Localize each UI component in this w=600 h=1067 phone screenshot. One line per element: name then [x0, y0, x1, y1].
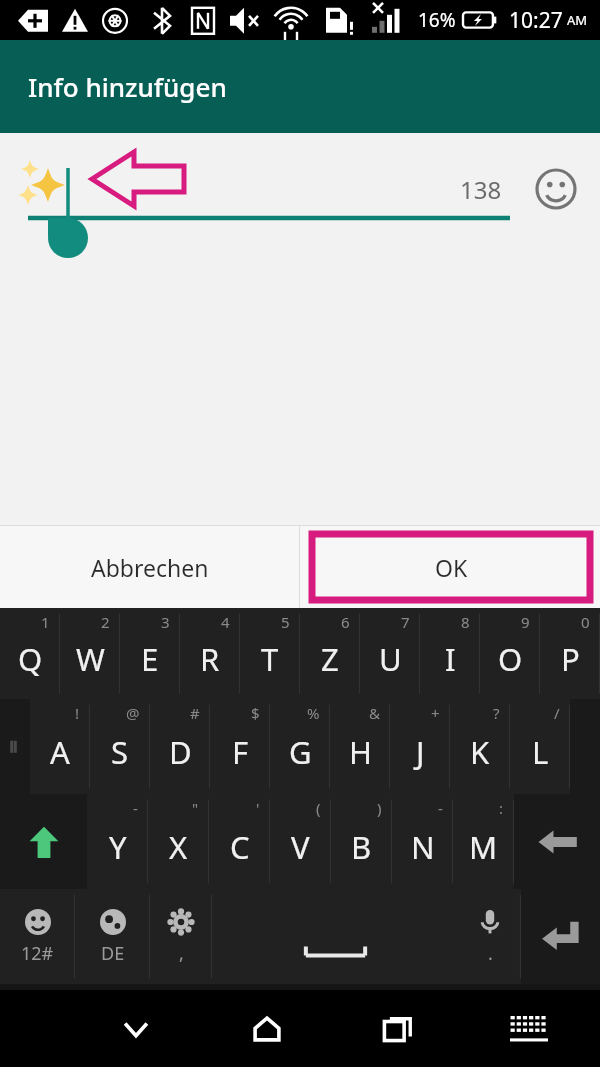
button[interactable]: OK: [300, 526, 600, 608]
staticText: T: [261, 638, 279, 680]
staticText: Info hinzufügen: [28, 69, 227, 104]
staticText: M: [469, 826, 498, 868]
button[interactable]: @: [90, 699, 150, 794]
staticText: 2: [101, 612, 110, 632]
button[interactable]: ): [331, 794, 392, 889]
button[interactable]: Voice input: [459, 889, 521, 984]
staticText: %: [307, 703, 320, 723]
staticText: @: [126, 703, 140, 723]
staticText: B: [351, 826, 372, 868]
staticText: 16%: [418, 7, 456, 33]
staticText: Y: [109, 826, 127, 868]
staticText: 12#: [21, 941, 54, 966]
button[interactable]: Symbols: [0, 889, 75, 984]
button[interactable]: 3: [120, 608, 180, 699]
staticText: W: [76, 638, 105, 680]
staticText: S: [111, 731, 129, 773]
staticText: /: [554, 703, 560, 723]
staticText: I: [445, 638, 456, 680]
staticText: 6: [341, 612, 350, 632]
staticText: AM: [567, 11, 588, 29]
staticText: A: [50, 731, 70, 773]
button[interactable]: Space: [212, 889, 459, 984]
button[interactable]: XT9: [0, 699, 30, 794]
staticText: 0: [581, 612, 590, 632]
staticText: J: [416, 731, 425, 773]
staticText: DE: [101, 941, 125, 966]
button[interactable]: 9: [480, 608, 540, 699]
staticText: V: [291, 826, 310, 868]
button[interactable]: -: [87, 794, 148, 889]
button[interactable]: Backspace: [514, 794, 600, 889]
staticText: ": [192, 798, 199, 818]
staticText: $: [251, 703, 260, 723]
button[interactable]: Hide keyboard: [463, 990, 594, 1067]
staticText: 5: [281, 612, 290, 632]
button[interactable]: Emoji: [530, 163, 582, 215]
staticText: F: [232, 731, 249, 773]
staticText: R: [200, 638, 220, 680]
staticText: C: [230, 826, 250, 868]
staticText: Abbrechen: [91, 552, 209, 583]
staticText: 8: [461, 612, 470, 632]
button[interactable]: Recent apps: [332, 990, 463, 1067]
staticText: 7: [401, 612, 410, 632]
button[interactable]: Abbrechen: [0, 526, 299, 608]
button[interactable]: !: [30, 699, 90, 794]
button[interactable]: Home: [201, 990, 332, 1067]
button[interactable]: Back: [71, 990, 201, 1067]
staticText: H: [349, 731, 372, 773]
staticText: X: [169, 826, 188, 868]
button[interactable]: ': [209, 794, 270, 889]
staticText: 10:27: [509, 6, 563, 35]
button[interactable]: 4: [180, 608, 240, 699]
button[interactable]: Shift: [0, 794, 87, 889]
staticText: Q: [18, 638, 43, 680]
staticText: 4: [221, 612, 230, 632]
button[interactable]: :: [453, 794, 514, 889]
staticText: E: [141, 638, 159, 680]
button[interactable]: +: [390, 699, 450, 794]
staticText: ): [377, 798, 382, 818]
button[interactable]: 2: [60, 608, 120, 699]
button[interactable]: #: [150, 699, 210, 794]
button[interactable]: Enter: [521, 889, 600, 984]
staticText: P: [561, 638, 580, 680]
staticText: Z: [321, 638, 339, 680]
staticText: #: [190, 703, 200, 723]
button[interactable]: ": [148, 794, 209, 889]
button[interactable]: 8: [420, 608, 480, 699]
button[interactable]: (: [270, 794, 331, 889]
staticText: ?: [493, 703, 500, 723]
button[interactable]: -: [392, 794, 453, 889]
button[interactable]: 7: [360, 608, 420, 699]
staticText: -: [438, 798, 443, 818]
staticText: ': [256, 798, 260, 818]
button[interactable]: 1: [0, 608, 60, 699]
button[interactable]: Language: [75, 889, 150, 984]
staticText: O: [498, 638, 523, 680]
staticText: OK: [435, 552, 468, 583]
button[interactable]: /: [510, 699, 570, 794]
button[interactable]: 0: [540, 608, 600, 699]
button[interactable]: Settings: [150, 889, 212, 984]
staticText: 3: [161, 612, 170, 632]
staticText: 138: [460, 173, 502, 206]
staticText: N: [411, 826, 435, 868]
staticText: 1: [41, 612, 50, 632]
staticText: +: [431, 703, 440, 723]
staticText: D: [169, 731, 192, 773]
staticText: .: [488, 941, 493, 966]
button[interactable]: &: [330, 699, 390, 794]
button[interactable]: $: [210, 699, 270, 794]
staticText: G: [289, 731, 312, 773]
button[interactable]: 6: [300, 608, 360, 699]
button[interactable]: ?: [450, 699, 510, 794]
button[interactable]: 5: [240, 608, 300, 699]
staticText: U: [379, 638, 402, 680]
staticText: :: [499, 798, 504, 818]
staticText: -: [133, 798, 138, 818]
staticText: (: [316, 798, 321, 818]
button[interactable]: %: [270, 699, 330, 794]
staticText: ,: [179, 941, 184, 966]
